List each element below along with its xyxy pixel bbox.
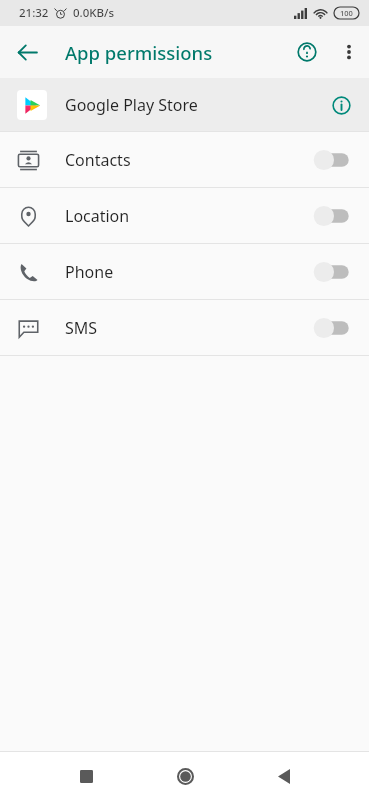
staticText: Location bbox=[65, 205, 130, 227]
button[interactable]: Toggle permission bbox=[313, 261, 351, 283]
button[interactable]: More options bbox=[329, 32, 369, 72]
staticText: SMS bbox=[65, 317, 98, 339]
button[interactable]: Phone bbox=[0, 244, 369, 299]
button[interactable]: Toggle permission bbox=[313, 149, 351, 171]
staticText: 0.0KB/s bbox=[73, 5, 115, 21]
button[interactable]: Toggle permission bbox=[313, 205, 351, 227]
button[interactable]: Toggle permission bbox=[313, 317, 351, 339]
button[interactable]: Contacts bbox=[0, 132, 369, 187]
button[interactable]: Recents bbox=[64, 754, 108, 798]
staticText: 21:32 bbox=[19, 5, 49, 21]
button[interactable]: Back bbox=[262, 754, 306, 798]
staticText: App permissions bbox=[65, 40, 213, 65]
button[interactable]: Help bbox=[285, 30, 329, 74]
button[interactable]: Location bbox=[0, 188, 369, 243]
button[interactable]: App info bbox=[319, 83, 363, 127]
button[interactable]: Home bbox=[163, 754, 207, 798]
button[interactable]: SMS bbox=[0, 300, 369, 355]
staticText: Contacts bbox=[65, 149, 131, 171]
staticText: Phone bbox=[65, 261, 114, 283]
staticText: Google Play Store bbox=[65, 94, 198, 116]
button[interactable]: Google Play Store bbox=[0, 78, 369, 131]
button[interactable]: Back bbox=[6, 31, 48, 73]
staticText: 100 bbox=[340, 8, 353, 18]
